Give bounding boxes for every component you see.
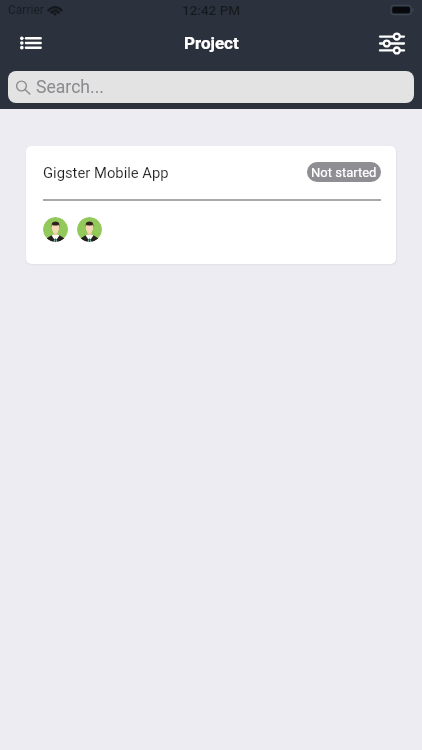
button[interactable]: Filter [371, 22, 413, 64]
button[interactable]: Search... [8, 71, 414, 103]
button[interactable]: Menu [9, 22, 51, 64]
staticText: Project [184, 33, 239, 53]
staticText: Not started [311, 165, 377, 180]
staticText: 12:42 PM [182, 2, 241, 18]
staticText: Carrier [8, 3, 44, 17]
button[interactable]: Gigster Mobile App [26, 146, 396, 264]
staticText: Gigster Mobile App [43, 164, 169, 181]
staticText: Search... [36, 77, 104, 98]
